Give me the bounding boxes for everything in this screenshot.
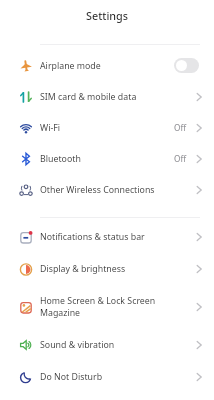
staticText: Display & brightness bbox=[40, 263, 126, 275]
staticText: Wi-Fi bbox=[40, 122, 61, 134]
staticText: Do Not Disturb bbox=[40, 371, 103, 383]
button[interactable]: Other Wireless Connections bbox=[0, 174, 214, 205]
staticText: Home Screen & Lock Screen bbox=[40, 295, 156, 307]
staticText: Sound & vibration bbox=[40, 339, 115, 351]
staticText: Off bbox=[174, 122, 187, 133]
button[interactable]: Display & brightness bbox=[0, 253, 214, 285]
staticText: Notifications & status bar bbox=[40, 231, 145, 243]
staticText: Magazine bbox=[40, 307, 81, 319]
button[interactable]: Wi-Fi bbox=[0, 112, 214, 143]
button[interactable]: SIM card & mobile data bbox=[0, 81, 214, 112]
button[interactable]: Notifications & status bar bbox=[0, 221, 214, 253]
staticText: Airplane mode bbox=[40, 60, 101, 72]
button[interactable]: Sound & vibration bbox=[0, 329, 214, 361]
staticText: SIM card & mobile data bbox=[40, 91, 137, 103]
button[interactable]: Do Not Disturb bbox=[0, 361, 214, 393]
staticText: Off bbox=[174, 153, 187, 164]
staticText: Other Wireless Connections bbox=[40, 184, 155, 196]
button[interactable]: Bluetooth bbox=[0, 143, 214, 174]
staticText: Settings bbox=[86, 8, 129, 23]
button[interactable]: Airplane mode bbox=[0, 50, 214, 81]
staticText: Bluetooth bbox=[40, 153, 81, 165]
button[interactable]: Home Screen & Lock Screen bbox=[0, 285, 214, 329]
